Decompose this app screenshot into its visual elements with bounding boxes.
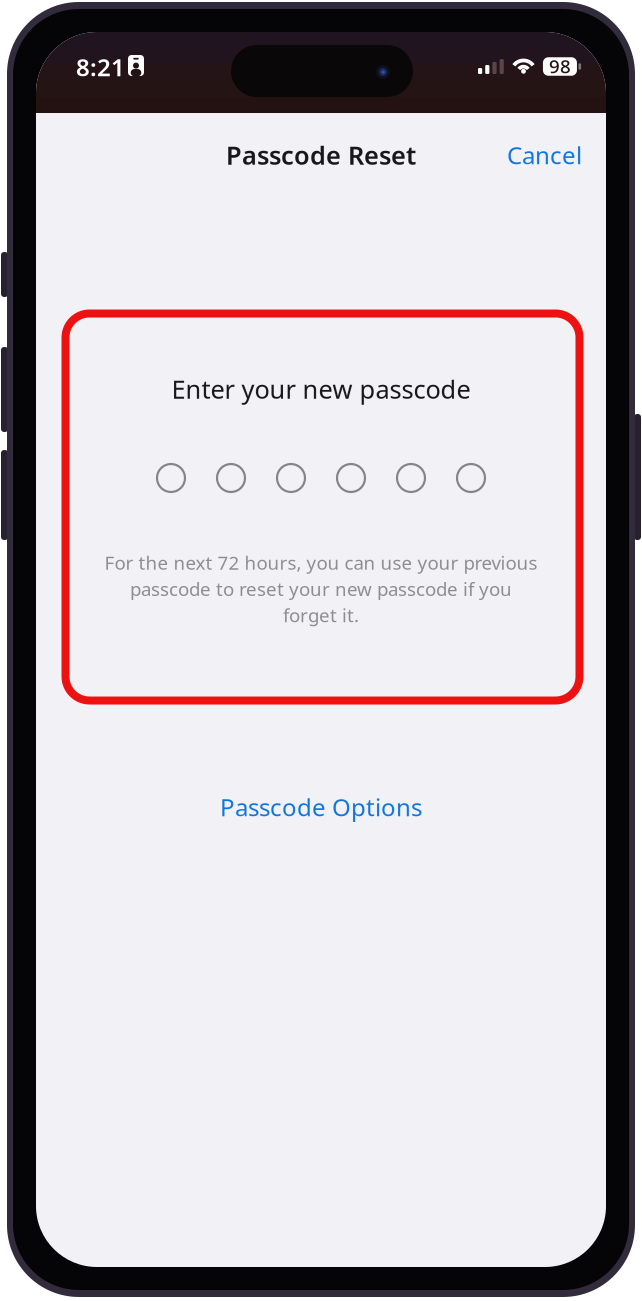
staticText: For the next 72 hours, you can use your … xyxy=(104,550,537,575)
staticText: Enter your new passcode xyxy=(171,372,470,406)
staticText: Cancel xyxy=(507,139,582,171)
staticText: 98 xyxy=(549,54,571,78)
staticText: forget it. xyxy=(283,603,359,627)
button[interactable]: Passcode entry field, 0 of 6 digits ente… xyxy=(36,464,606,492)
staticText: passcode to reset your new passcode if y… xyxy=(130,576,512,601)
staticText: 8:21 xyxy=(76,51,125,83)
button[interactable]: Cancel xyxy=(501,140,588,170)
button[interactable]: Passcode Options xyxy=(36,790,606,824)
staticText: Passcode Reset xyxy=(226,138,416,172)
staticText: Passcode Options xyxy=(220,791,422,823)
